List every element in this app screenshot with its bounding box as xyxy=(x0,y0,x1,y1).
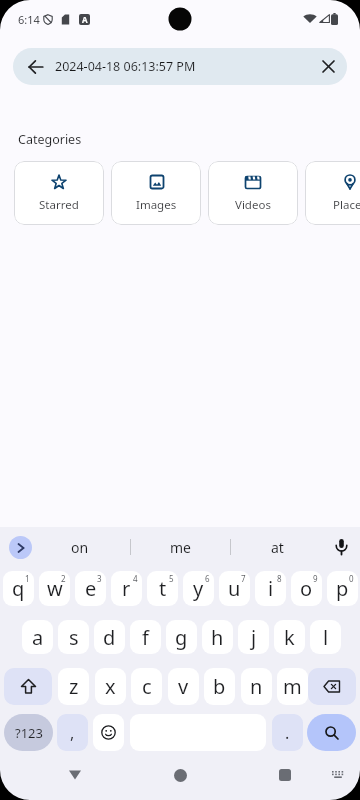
button[interactable]: Images xyxy=(111,161,201,225)
button[interactable]: a xyxy=(22,620,53,654)
staticText: 7 xyxy=(241,573,246,584)
staticText: m xyxy=(283,673,302,700)
staticText: q xyxy=(12,575,25,602)
button[interactable]: g xyxy=(166,620,197,654)
staticText: d xyxy=(103,624,116,651)
staticText: r xyxy=(122,575,131,602)
button[interactable]: z xyxy=(58,668,89,705)
staticText: u xyxy=(228,575,241,602)
staticText: i xyxy=(268,575,274,602)
staticText: 2024-04-18 06:13:57 PM xyxy=(55,58,196,75)
staticText: Videos xyxy=(235,197,271,213)
staticText: j xyxy=(251,624,257,651)
button[interactable] xyxy=(328,765,348,785)
staticText: me xyxy=(170,538,191,557)
button[interactable]: y xyxy=(183,571,214,606)
button[interactable]: e xyxy=(75,571,106,606)
button[interactable]: t xyxy=(147,571,178,606)
button[interactable]: p xyxy=(327,571,358,606)
staticText: a xyxy=(32,624,44,651)
staticText: v xyxy=(178,673,189,700)
staticText: c xyxy=(142,673,152,700)
button[interactable] xyxy=(272,762,298,788)
staticText: f xyxy=(142,624,149,651)
staticText: . xyxy=(285,722,290,744)
staticText: at xyxy=(271,538,284,557)
button[interactable]: , xyxy=(57,714,88,751)
button[interactable]: s xyxy=(58,620,89,654)
staticText: w xyxy=(47,575,63,602)
button[interactable]: c xyxy=(131,668,162,705)
staticText: s xyxy=(69,624,79,651)
button[interactable]: f xyxy=(130,620,161,654)
button[interactable]: Places xyxy=(305,161,360,225)
button[interactable]: 2024-04-18 06:13:57 PM xyxy=(13,48,347,85)
button[interactable]: on xyxy=(45,535,115,559)
staticText: 0 xyxy=(349,573,354,584)
staticText: 3 xyxy=(97,573,102,584)
button[interactable]: r xyxy=(111,571,142,606)
button[interactable]: x xyxy=(95,668,126,705)
staticText: A xyxy=(82,14,88,25)
staticText: l xyxy=(323,624,329,651)
button[interactable] xyxy=(9,536,32,559)
button[interactable] xyxy=(330,535,353,559)
button[interactable] xyxy=(4,668,52,705)
button[interactable] xyxy=(93,714,124,751)
button[interactable]: ?123 xyxy=(4,714,53,751)
staticText: 9 xyxy=(313,573,318,584)
button[interactable]: at xyxy=(242,535,312,559)
button[interactable]: n xyxy=(241,668,272,705)
button[interactable]: Videos xyxy=(208,161,298,225)
button[interactable]: me xyxy=(145,535,215,559)
staticText: Categories xyxy=(18,131,82,148)
staticText: 4 xyxy=(133,573,138,584)
button[interactable]: b xyxy=(204,668,235,705)
staticText: h xyxy=(211,624,224,651)
button[interactable]: q xyxy=(3,571,34,606)
staticText: , xyxy=(70,722,75,744)
staticText: n xyxy=(250,673,263,700)
button[interactable]: o xyxy=(291,571,322,606)
button[interactable] xyxy=(307,714,356,751)
staticText: on xyxy=(71,538,89,557)
staticText: t xyxy=(159,575,167,602)
button[interactable]: v xyxy=(168,668,199,705)
staticText: 6:14 xyxy=(18,12,40,27)
staticText: e xyxy=(85,575,97,602)
staticText: b xyxy=(213,673,226,700)
staticText: ?123 xyxy=(15,724,43,742)
button[interactable]: w xyxy=(39,571,70,606)
button[interactable]: h xyxy=(202,620,233,654)
staticText: 1 xyxy=(25,573,30,584)
staticText: g xyxy=(175,624,188,651)
button[interactable]: . xyxy=(272,714,303,751)
button[interactable]: u xyxy=(219,571,250,606)
staticText: 2 xyxy=(61,573,66,584)
button[interactable]: Starred xyxy=(14,161,104,225)
button[interactable] xyxy=(308,668,356,705)
button[interactable]: j xyxy=(238,620,269,654)
staticText: Places xyxy=(333,197,360,213)
staticText: k xyxy=(284,624,295,651)
button[interactable] xyxy=(28,59,44,75)
button[interactable] xyxy=(167,762,193,788)
button[interactable]: i xyxy=(255,571,286,606)
staticText: p xyxy=(336,575,349,602)
staticText: y xyxy=(193,575,204,602)
staticText: Images xyxy=(136,197,177,213)
button[interactable]: l xyxy=(310,620,341,654)
staticText: 5 xyxy=(169,573,174,584)
button[interactable]: m xyxy=(277,668,308,705)
staticText: 8 xyxy=(277,573,282,584)
staticText: Starred xyxy=(39,197,79,213)
staticText: o xyxy=(300,575,313,602)
button[interactable] xyxy=(62,762,88,788)
button[interactable]: k xyxy=(274,620,305,654)
staticText: 6 xyxy=(205,573,210,584)
staticText: z xyxy=(69,673,79,700)
button[interactable]: d xyxy=(94,620,125,654)
staticText: x xyxy=(105,673,116,700)
button[interactable] xyxy=(318,56,339,77)
